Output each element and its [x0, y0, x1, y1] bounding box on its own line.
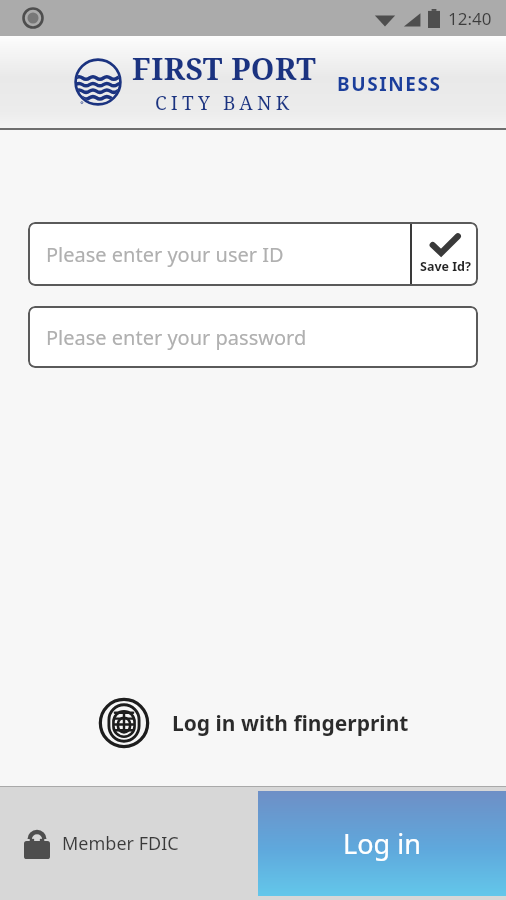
staticText: Log in — [343, 825, 421, 862]
staticText: CITY BANK — [155, 90, 294, 116]
button[interactable]: Fingerprint — [0, 697, 506, 749]
staticText: Save Id? — [420, 258, 471, 275]
button[interactable]: Save Id? — [412, 222, 478, 286]
button[interactable]: Please enter your password — [28, 306, 478, 368]
button[interactable]: Member FDIC — [0, 787, 258, 900]
button[interactable]: Log in — [258, 791, 506, 896]
staticText: Member FDIC — [62, 831, 179, 856]
staticText: FIRST PORT — [132, 48, 317, 89]
staticText: Please enter your user ID — [46, 241, 284, 268]
staticText: 12:40 — [448, 7, 492, 30]
button[interactable]: Please enter your user ID — [28, 222, 410, 286]
staticText: BUSINESS — [337, 71, 442, 97]
other: Fingerprint — [98, 697, 150, 749]
staticText: Please enter your password — [46, 324, 307, 351]
staticText: Log in with fingerprint — [172, 709, 409, 738]
